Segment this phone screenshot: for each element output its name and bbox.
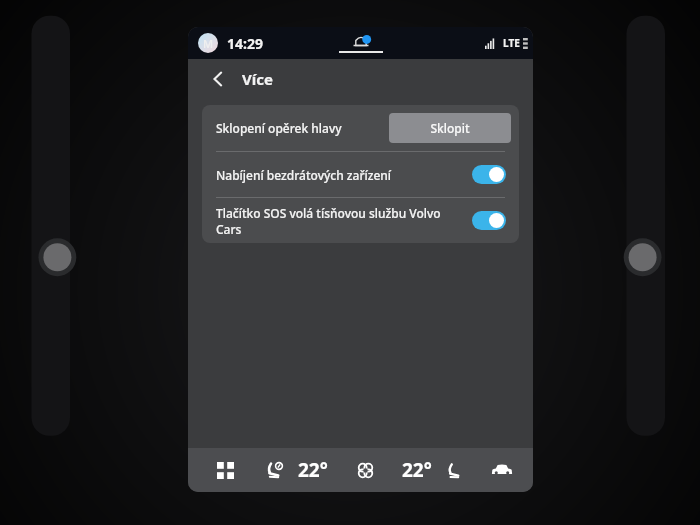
button[interactable]: Sklopit xyxy=(389,113,511,143)
button[interactable]: Profile xyxy=(198,33,218,53)
button[interactable]: Nabíjení bezdrátových zařízení xyxy=(202,152,519,197)
button[interactable]: 22° xyxy=(298,457,328,483)
staticText: 14:29 xyxy=(227,34,263,53)
staticText: Nabíjení bezdrátových zařízení xyxy=(216,167,464,183)
button[interactable]: Back xyxy=(202,63,234,95)
staticText: Více xyxy=(242,69,273,89)
button[interactable]: Toggle on xyxy=(472,211,506,230)
staticText: M xyxy=(203,36,214,51)
button[interactable]: Car settings xyxy=(485,453,519,487)
staticText: Tlačítko SOS volá tísňovou službu Volvo … xyxy=(216,205,464,237)
staticText: Sklopení opěrek hlavy xyxy=(216,120,389,136)
button[interactable]: Notifications xyxy=(348,34,374,50)
button[interactable]: Sklopení opěrek hlavy xyxy=(202,105,519,151)
button[interactable]: Apps xyxy=(208,453,242,487)
button[interactable]: Tlačítko SOS volá tísňovou službu Volvo … xyxy=(202,198,519,243)
button[interactable]: Passenger seat heating xyxy=(438,455,468,485)
button[interactable]: Toggle on xyxy=(472,165,506,184)
button[interactable]: Fan xyxy=(348,453,382,487)
staticText: Sklopit xyxy=(430,120,470,136)
staticText: LTE xyxy=(503,36,520,50)
button[interactable]: Driver seat heating xyxy=(258,453,292,487)
button[interactable]: 22° xyxy=(402,457,432,483)
